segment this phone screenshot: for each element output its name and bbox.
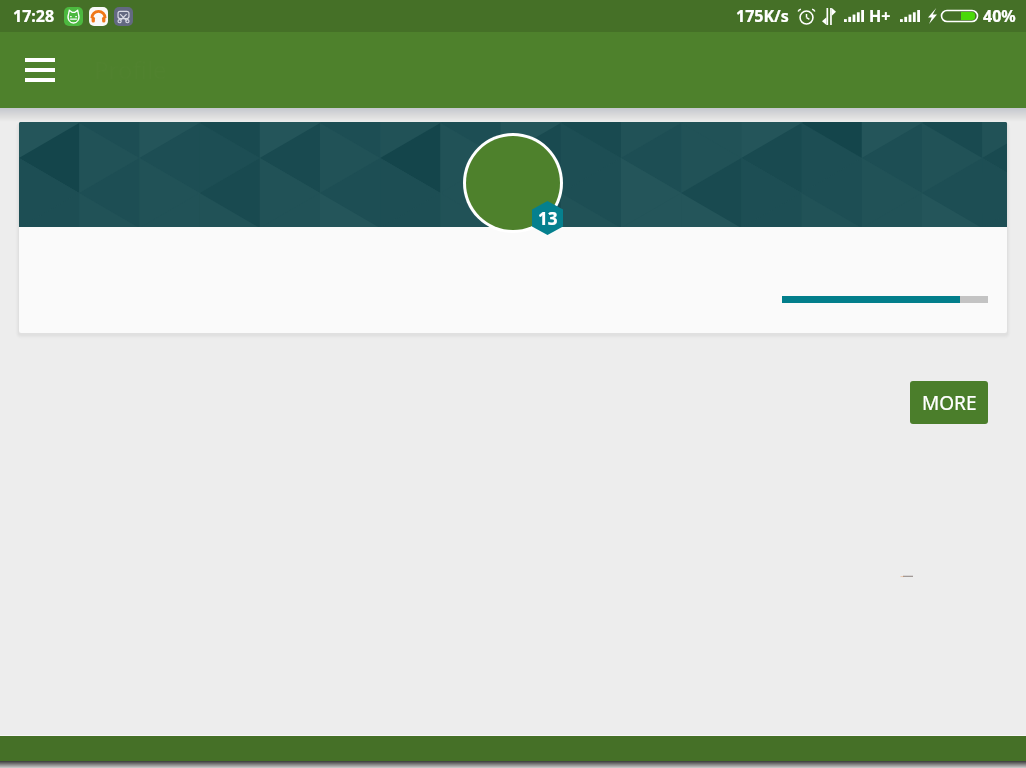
button[interactable]: MORE [910, 381, 988, 424]
staticText: H+ [869, 5, 891, 27]
staticText: 13 [538, 207, 558, 230]
staticText: MORE [922, 390, 977, 416]
button[interactable]: Open navigation menu [16, 46, 64, 94]
staticText: 40% [983, 5, 1016, 27]
staticText: 175K/s [736, 5, 789, 27]
staticText: 17:28 [13, 5, 55, 27]
